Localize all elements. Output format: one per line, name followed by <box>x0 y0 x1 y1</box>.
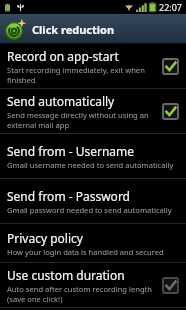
button[interactable]: Disabled checkbox <box>159 274 181 296</box>
staticText: How your login data is handled and secur… <box>7 247 164 257</box>
button[interactable]: Send from - Password <box>0 179 186 223</box>
staticText: Send from - Username <box>7 143 135 159</box>
button[interactable]: Enabled checkbox <box>159 100 181 122</box>
button[interactable]: Send from - Username <box>0 134 186 178</box>
staticText: 22:07 <box>159 1 183 13</box>
staticText: Record on app-start <box>7 48 119 64</box>
button[interactable]: Click reduction <box>0 14 186 44</box>
button[interactable]: Send automatically <box>0 89 186 133</box>
button[interactable]: Privacy policy <box>0 224 186 262</box>
staticText: Gmail password needed to send automatica… <box>7 205 172 215</box>
staticText: Gmail username needed to send automatica… <box>7 160 174 170</box>
staticText: Privacy policy <box>7 230 83 246</box>
staticText: Click reduction <box>32 22 115 37</box>
staticText: Send message directly without using an e… <box>7 110 154 130</box>
button[interactable]: Use custom duration <box>0 263 186 307</box>
staticText: Send automatically <box>7 93 115 109</box>
staticText: Use custom duration <box>7 267 125 283</box>
staticText: Auto send after custom recording length … <box>7 284 154 304</box>
staticText: Send from - Password <box>7 188 130 204</box>
button[interactable]: Enabled checkbox <box>159 55 181 77</box>
staticText: Start recording immediately, exit when f… <box>7 65 154 85</box>
button[interactable]: Record on app-start <box>0 44 186 88</box>
